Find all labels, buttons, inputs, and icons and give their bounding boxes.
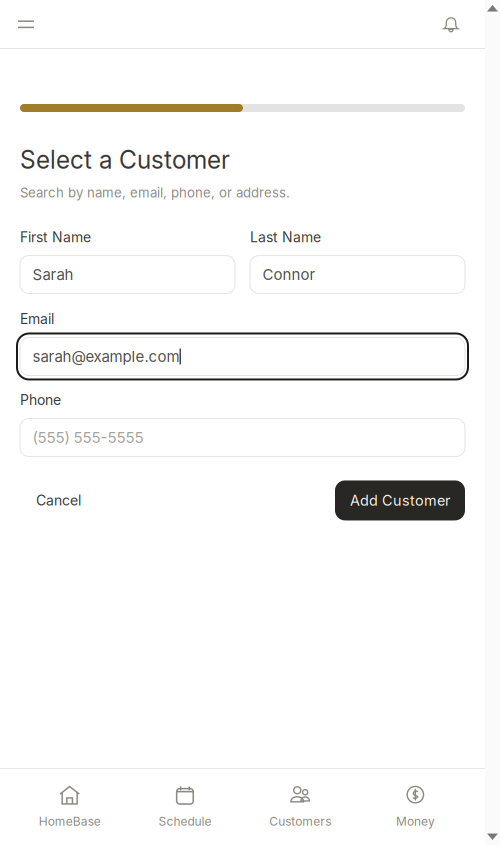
- button[interactable]: Money: [358, 783, 473, 831]
- staticText: Connor: [263, 265, 316, 284]
- staticText: Select a Customer: [20, 145, 230, 175]
- button[interactable]: Add Customer: [335, 480, 465, 520]
- staticText: Cancel: [36, 492, 81, 509]
- staticText: Sarah: [33, 265, 74, 284]
- staticText: First Name: [20, 229, 91, 245]
- staticText: Email: [20, 311, 54, 327]
- staticText: Schedule: [158, 814, 211, 829]
- staticText: (555) 555-5555: [33, 428, 144, 446]
- staticText: Add Customer: [350, 492, 450, 509]
- button[interactable]: Menu: [9, 7, 43, 41]
- staticText: Phone: [20, 391, 61, 408]
- staticText: sarah@example.com: [33, 347, 180, 365]
- button[interactable]: HomeBase: [12, 783, 127, 831]
- staticText: Money: [396, 814, 435, 829]
- button[interactable]: Notifications: [434, 7, 468, 41]
- staticText: Customers: [269, 814, 331, 829]
- staticText: Search by name, email, phone, or address…: [20, 185, 290, 201]
- button[interactable]: Cancel: [20, 480, 97, 520]
- staticText: HomeBase: [39, 814, 101, 829]
- staticText: Last Name: [250, 229, 321, 245]
- button[interactable]: Schedule: [127, 783, 243, 831]
- button[interactable]: Customers: [243, 783, 358, 831]
